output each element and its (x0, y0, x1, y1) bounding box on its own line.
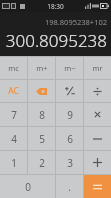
staticText: 0 (25, 180, 31, 194)
staticText: 2 (39, 156, 45, 170)
button[interactable]: 3 (56, 151, 83, 174)
button[interactable]: 0 (0, 175, 55, 198)
button[interactable]: m− (56, 57, 83, 79)
button[interactable]: Plus (84, 151, 111, 174)
staticText: 6 (67, 132, 73, 146)
button[interactable]: 4 (0, 127, 27, 150)
staticText: mc (8, 63, 19, 73)
button[interactable]: 9 (56, 103, 83, 126)
staticText: 9 (67, 108, 73, 122)
staticText: 8 (39, 108, 45, 122)
button[interactable]: AC (0, 80, 27, 102)
staticText: 4 (11, 132, 17, 146)
button[interactable]: m+ (28, 57, 55, 79)
staticText: AC (8, 85, 19, 97)
button[interactable]: Backspace (28, 80, 55, 102)
button[interactable]: 1 (0, 151, 27, 174)
staticText: 198.8095238+102 (44, 17, 107, 27)
staticText: 5 (39, 132, 45, 146)
button[interactable]: mr (84, 57, 111, 79)
button[interactable]: Minus (84, 127, 111, 150)
staticText: mr (92, 63, 103, 73)
button[interactable]: Divide (84, 80, 111, 102)
button[interactable]: Multiply (84, 103, 111, 126)
button[interactable]: 5 (28, 127, 55, 150)
staticText: 1 (11, 156, 17, 170)
staticText: m− (64, 63, 76, 73)
button[interactable]: mc (0, 57, 27, 79)
button[interactable]: . (56, 175, 83, 198)
staticText: m+ (36, 63, 48, 73)
staticText: 7 (11, 108, 17, 122)
staticText: 3 (67, 156, 73, 170)
button[interactable]: 2 (28, 151, 55, 174)
button[interactable]: Equals (84, 175, 111, 198)
staticText: . (68, 180, 71, 194)
staticText: 300.8095238 (5, 29, 107, 52)
staticText: 18:30 (47, 2, 64, 11)
button[interactable]: 6 (56, 127, 83, 150)
button[interactable]: 8 (28, 103, 55, 126)
button[interactable]: 7 (0, 103, 27, 126)
button[interactable]: Plus minus (56, 80, 83, 102)
